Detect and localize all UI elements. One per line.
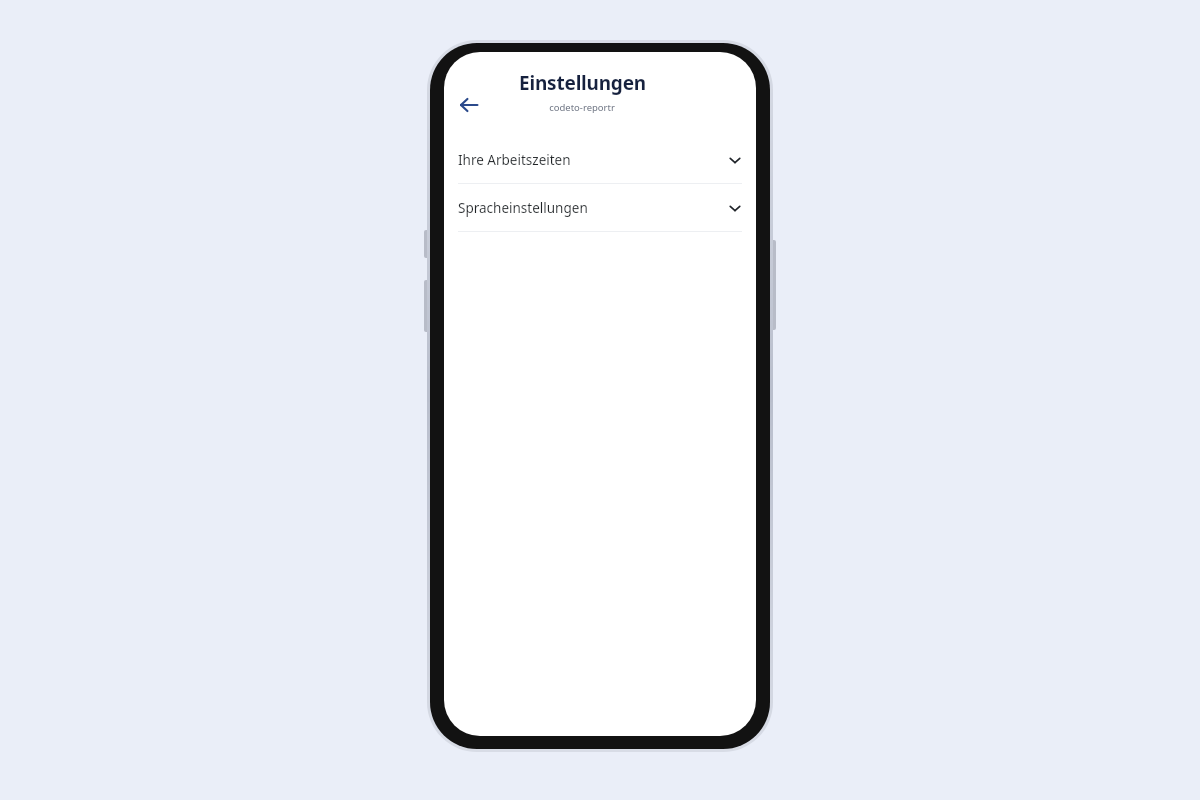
button[interactable]: Spracheinstellungen (444, 184, 756, 231)
staticText: Einstellungen (519, 70, 646, 96)
button[interactable]: Zurück (454, 90, 484, 120)
staticText: Ihre Arbeitszeiten (458, 151, 571, 169)
staticText: codeto-reportr (549, 101, 615, 114)
button[interactable]: Ihre Arbeitszeiten (444, 136, 756, 183)
staticText: Spracheinstellungen (458, 199, 588, 217)
